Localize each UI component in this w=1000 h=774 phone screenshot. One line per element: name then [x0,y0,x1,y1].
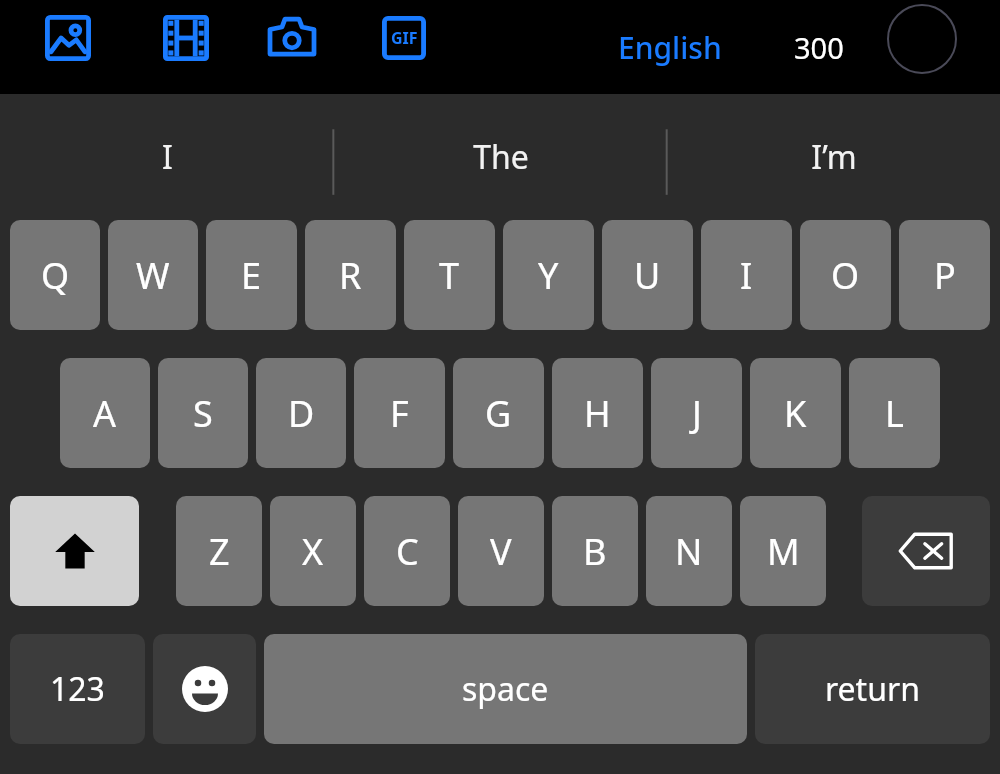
staticText: Z [209,527,230,576]
button[interactable]: G [453,358,544,468]
button[interactable]: X [270,496,356,606]
button[interactable]: I [0,94,334,220]
staticText: 300 [794,28,844,67]
button[interactable]: space [264,634,747,744]
button[interactable]: M [740,496,826,606]
staticText: English [618,27,722,68]
staticText: I’m [811,135,857,179]
button[interactable]: return [755,634,990,744]
button[interactable]: O [800,220,891,330]
staticText: D [288,389,315,438]
button[interactable]: Y [503,220,594,330]
button[interactable]: 300 [788,22,850,73]
staticText: return [825,667,920,711]
button[interactable]: S [158,358,248,468]
button[interactable]: A [60,358,150,468]
button[interactable]: English [610,21,730,74]
button[interactable]: Video [152,6,220,70]
staticText: The [473,135,529,179]
staticText: N [675,527,703,576]
staticText: GIF [391,27,418,49]
button[interactable]: F [354,358,445,468]
staticText: K [784,389,807,438]
staticText: W [136,251,170,300]
button[interactable]: R [305,220,396,330]
button[interactable]: Emoji [153,634,256,744]
button[interactable]: U [602,220,693,330]
staticText: P [934,251,956,300]
staticText: L [885,389,904,438]
button[interactable]: GIF [370,6,438,70]
staticText: Y [538,251,559,300]
staticText: V [490,527,512,576]
staticText: M [767,527,800,576]
button[interactable]: The [334,94,667,220]
staticText: U [634,251,661,300]
button[interactable]: H [552,358,643,468]
button[interactable]: I’m [667,94,1000,220]
staticText: F [390,389,409,438]
button[interactable]: Z [176,496,262,606]
staticText: I [162,135,173,179]
button[interactable]: Photos [34,6,102,70]
button[interactable]: 123 [10,634,145,744]
staticText: J [692,389,702,438]
button[interactable]: Backspace [862,496,990,606]
staticText: H [584,389,611,438]
button[interactable]: Camera [258,6,326,70]
staticText: O [831,251,860,300]
staticText: C [396,527,419,576]
button[interactable]: L [849,358,940,468]
button[interactable]: J [651,358,742,468]
button[interactable]: Shift [10,496,139,606]
staticText: E [241,251,262,300]
button[interactable]: D [256,358,346,468]
button[interactable]: K [750,358,841,468]
staticText: I [740,251,753,300]
staticText: space [462,667,549,711]
button[interactable]: V [458,496,544,606]
button[interactable]: W [108,220,198,330]
staticText: G [485,389,512,438]
staticText: Q [41,251,70,300]
button[interactable]: C [364,496,450,606]
button[interactable]: Account [885,2,959,76]
staticText: A [93,389,117,438]
staticText: 123 [50,667,105,711]
button[interactable]: N [646,496,732,606]
staticText: R [339,251,362,300]
button[interactable]: T [404,220,495,330]
button[interactable]: B [552,496,638,606]
staticText: S [193,389,213,438]
staticText: B [583,527,607,576]
staticText: X [302,527,324,576]
button[interactable]: Q [10,220,100,330]
button[interactable]: I [701,220,792,330]
staticText: T [439,251,460,300]
button[interactable]: E [206,220,297,330]
button[interactable]: P [899,220,990,330]
